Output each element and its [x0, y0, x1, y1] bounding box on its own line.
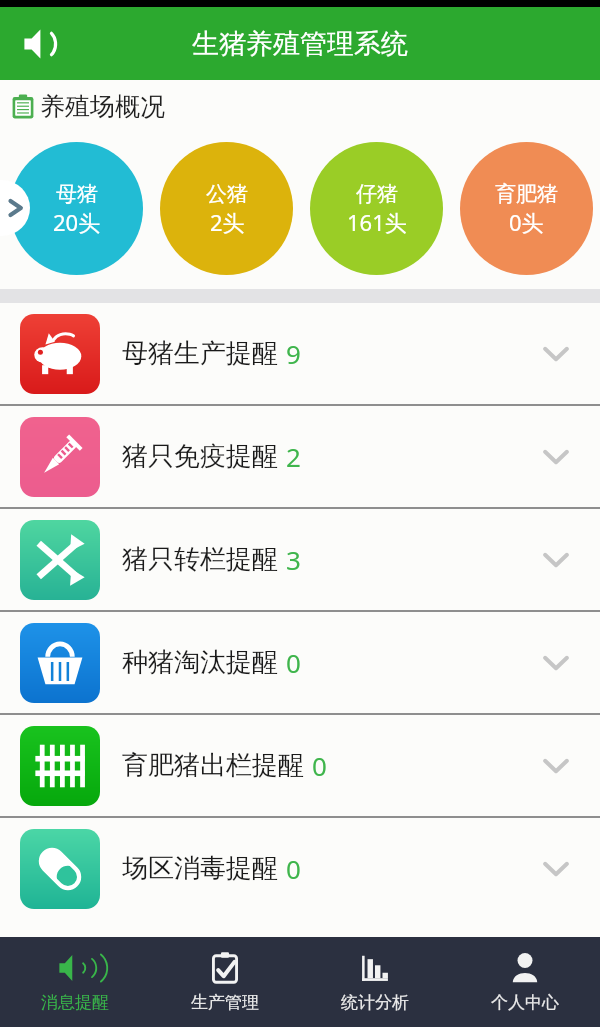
- staticText: 0: [286, 645, 301, 680]
- button[interactable]: Previous: [0, 180, 30, 236]
- staticText: 9: [286, 336, 301, 371]
- staticText: 仔猪: [356, 181, 398, 207]
- button[interactable]: 母猪生产提醒: [0, 303, 600, 404]
- staticText: 生猪养殖管理系统: [192, 27, 408, 61]
- button[interactable]: 育肥猪: [460, 142, 593, 275]
- button[interactable]: 种猪淘汰提醒: [0, 612, 600, 713]
- staticText: 公猪: [206, 181, 248, 207]
- staticText: 2头: [210, 207, 245, 237]
- staticText: 0头: [509, 207, 544, 237]
- staticText: 场区消毒提醒: [122, 852, 278, 885]
- staticText: 消息提醒: [41, 992, 109, 1013]
- button[interactable]: 猪只免疫提醒: [0, 406, 600, 507]
- staticText: 0: [286, 851, 301, 886]
- button[interactable]: Expand: [528, 532, 584, 588]
- staticText: 2: [286, 439, 301, 474]
- staticText: 母猪: [56, 181, 98, 207]
- button[interactable]: 统计分析: [300, 937, 450, 1027]
- staticText: 育肥猪出栏提醒: [122, 749, 304, 782]
- staticText: 养殖场概况: [40, 91, 165, 122]
- button[interactable]: Sound: [16, 18, 68, 70]
- button[interactable]: 消息提醒: [0, 937, 150, 1027]
- staticText: 猪只免疫提醒: [122, 440, 278, 473]
- staticText: 种猪淘汰提醒: [122, 646, 278, 679]
- button[interactable]: Expand: [528, 635, 584, 691]
- button[interactable]: 猪只转栏提醒: [0, 509, 600, 610]
- button[interactable]: 生产管理: [150, 937, 300, 1027]
- button[interactable]: Expand: [528, 841, 584, 897]
- staticText: 0: [312, 748, 327, 783]
- button[interactable]: 个人中心: [450, 937, 600, 1027]
- staticText: 生产管理: [191, 992, 259, 1013]
- staticText: 个人中心: [491, 992, 559, 1013]
- staticText: 母猪生产提醒: [122, 337, 278, 370]
- button[interactable]: 公猪: [160, 142, 293, 275]
- button[interactable]: Expand: [528, 429, 584, 485]
- staticText: 育肥猪: [495, 181, 558, 207]
- staticText: 统计分析: [341, 992, 409, 1013]
- staticText: 猪只转栏提醒: [122, 543, 278, 576]
- button[interactable]: 育肥猪出栏提醒: [0, 715, 600, 816]
- staticText: 20头: [53, 207, 101, 237]
- button[interactable]: 仔猪: [310, 142, 443, 275]
- staticText: 161头: [347, 207, 407, 237]
- button[interactable]: Expand: [528, 326, 584, 382]
- button[interactable]: 场区消毒提醒: [0, 818, 600, 919]
- staticText: 3: [286, 542, 301, 577]
- button[interactable]: 母猪: [10, 142, 143, 275]
- button[interactable]: Expand: [528, 738, 584, 794]
